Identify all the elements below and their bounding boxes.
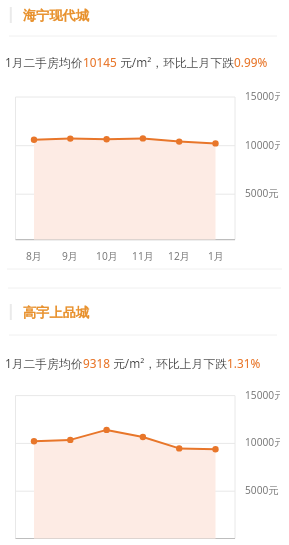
staticText: 8月 <box>20 249 48 545</box>
staticText: 元/m²，环比上月下跌 <box>110 355 227 371</box>
staticText: 元/m²，环比上月下跌 <box>117 54 234 70</box>
staticText: 0.99% <box>234 54 268 70</box>
staticText: 9318 <box>83 355 110 371</box>
button[interactable]: 高宇上品城 <box>0 288 289 335</box>
staticText: 9月 <box>56 249 84 545</box>
staticText: 15000元 <box>245 388 280 402</box>
staticText: 1月 <box>202 249 230 545</box>
staticText: 高宇上品城 <box>23 304 89 321</box>
staticText: 12月 <box>165 249 193 545</box>
staticText: 5000元 <box>245 483 279 497</box>
staticText: 10000元 <box>245 138 280 152</box>
staticText: 1.31% <box>227 355 261 371</box>
staticText: 5000元 <box>245 186 279 200</box>
staticText: 海宁现代城 <box>23 7 89 24</box>
staticText: 10145 <box>83 54 117 70</box>
staticText: 10月 <box>93 249 121 545</box>
staticText: 11月 <box>129 249 157 545</box>
staticText: 15000元 <box>245 89 280 103</box>
staticText: 1月二手房均价 <box>5 54 83 70</box>
button[interactable]: 海宁现代城 <box>0 0 289 36</box>
staticText: 1月二手房均价 <box>5 355 83 371</box>
staticText: 10000元 <box>245 435 280 449</box>
